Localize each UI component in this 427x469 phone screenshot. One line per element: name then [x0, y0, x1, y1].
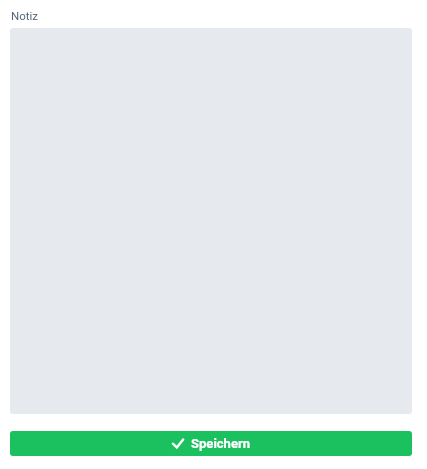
staticText: Speichern [191, 436, 250, 451]
button[interactable]: Speichern [10, 431, 412, 456]
staticText: Notiz [11, 9, 39, 22]
